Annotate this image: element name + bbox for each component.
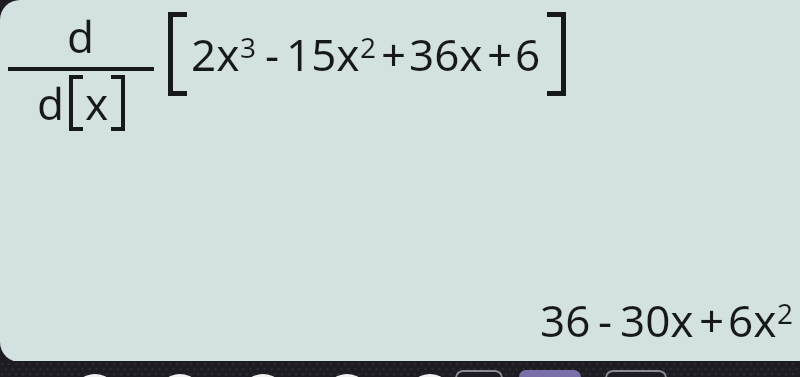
button[interactable]: Key [455, 370, 503, 377]
staticText: 2 [777, 294, 794, 332]
staticText: 6x [728, 290, 777, 350]
button[interactable]: d [0, 0, 800, 362]
staticText: + [699, 290, 725, 350]
staticText: x [85, 73, 109, 133]
staticText: 2x [191, 24, 240, 84]
button[interactable]: Key [605, 370, 667, 377]
staticText: 2 [360, 28, 377, 66]
staticText: - [265, 24, 280, 84]
staticText: 36x [409, 24, 483, 84]
staticText: d [37, 73, 65, 133]
staticText: 36 [540, 290, 591, 350]
staticText: + [381, 24, 407, 84]
staticText: 3 [240, 28, 257, 66]
button[interactable]: Equals [519, 370, 581, 377]
staticText: d [67, 6, 95, 66]
staticText: - [598, 290, 613, 350]
staticText: 30x [620, 290, 694, 350]
staticText: + [487, 24, 513, 84]
staticText: 6 [515, 24, 541, 84]
staticText: 15x [286, 24, 360, 84]
